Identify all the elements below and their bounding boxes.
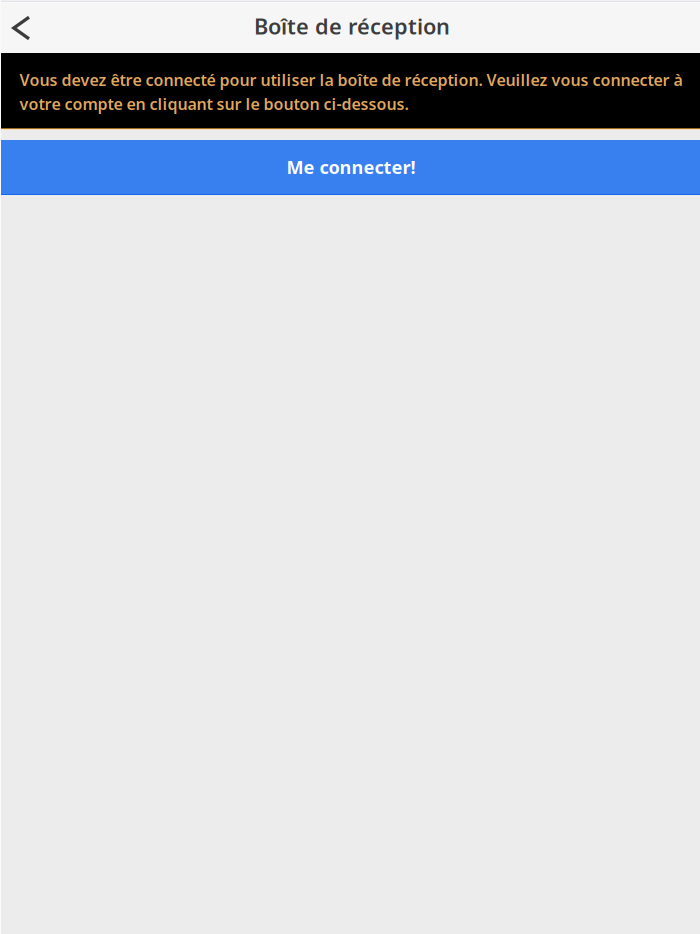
button[interactable]: Retour (0, 2, 44, 53)
staticText: Vous devez être connecté pour utiliser l… (19, 69, 682, 115)
staticText: Me connecter! (286, 155, 415, 179)
button[interactable]: Me connecter! (0, 140, 700, 195)
staticText: Boîte de réception (254, 11, 450, 41)
